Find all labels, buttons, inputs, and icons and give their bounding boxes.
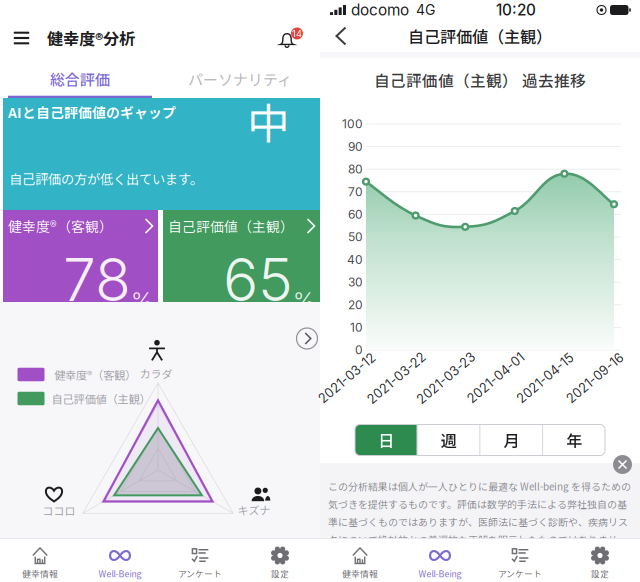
staticText: アンケート [498, 567, 542, 580]
staticText: 週 [441, 428, 457, 452]
staticText: AIと自己評価値のギャップ [8, 102, 176, 122]
button[interactable]: 週 [418, 424, 480, 455]
staticText: 60 [348, 207, 363, 222]
button[interactable]: 健幸情報 [320, 538, 400, 582]
staticText: 2021-03-12 [312, 370, 382, 386]
staticText: Well-Being [418, 567, 461, 580]
button[interactable]: アンケート [160, 538, 240, 582]
staticText: 2021-04-01 [461, 370, 531, 386]
button[interactable]: Next [296, 328, 317, 349]
staticText: 健幸情報 [342, 567, 378, 580]
button[interactable]: Well-Being [400, 538, 480, 582]
staticText: パーソナリティ [188, 68, 292, 90]
button[interactable]: パーソナリティ [160, 60, 320, 98]
staticText: 14 [292, 28, 302, 39]
staticText: 総合評価 [50, 68, 110, 90]
staticText: カラダ [139, 366, 172, 381]
button[interactable]: Notifications [273, 16, 309, 60]
staticText: 70 [348, 184, 363, 199]
staticText: 自己評価値（主観） 過去推移 [374, 69, 586, 91]
staticText: 40 [347, 252, 363, 267]
staticText: 80 [348, 162, 363, 176]
button[interactable]: 設定 [560, 538, 640, 582]
staticText: 50 [348, 230, 363, 244]
staticText: 設定 [271, 567, 289, 580]
staticText: 20 [348, 297, 363, 312]
staticText: % [131, 286, 153, 315]
staticText: 設定 [591, 567, 609, 580]
staticText: 90 [348, 139, 363, 154]
staticText: 健幸情報 [22, 567, 58, 580]
staticText: 健幸度®分析 [47, 26, 135, 50]
staticText: 健幸度®（客観） [54, 366, 136, 383]
button[interactable]: Back [320, 20, 362, 52]
staticText: キズナ [237, 502, 270, 518]
button[interactable]: 自己評価値（主観） [163, 210, 320, 302]
button[interactable]: 設定 [240, 538, 320, 582]
button[interactable]: 年 [543, 424, 605, 455]
button[interactable]: Close [613, 455, 632, 474]
staticText: 4G [416, 1, 435, 18]
staticText: 中 [247, 90, 290, 152]
button[interactable]: 総合評価 [0, 60, 160, 98]
staticText: 0 [355, 343, 363, 357]
staticText: 健幸度®（客観） [8, 216, 113, 236]
staticText: 月 [503, 428, 519, 452]
staticText: Well-Being [98, 567, 141, 580]
staticText: 30 [348, 275, 363, 289]
staticText: 自己評価値（主観） [51, 390, 150, 407]
staticText: 78 [63, 244, 131, 315]
button[interactable]: Well-Being [80, 538, 160, 582]
staticText: 自己評価値（主観） [168, 216, 294, 236]
staticText: 日 [378, 428, 394, 452]
staticText: 100 [342, 117, 363, 131]
staticText: docomo [351, 1, 409, 19]
staticText: 年 [566, 428, 582, 452]
staticText: 2021-03-22 [361, 370, 433, 386]
staticText: 2021-04-15 [510, 370, 580, 386]
staticText: 自己評価の方が低く出ています。 [9, 169, 203, 188]
staticText: % [293, 286, 315, 315]
staticText: 10:20 [496, 1, 536, 19]
button[interactable]: 日 [355, 424, 417, 455]
staticText: 10 [350, 320, 363, 335]
staticText: この分析結果は個人が一人ひとりに最適な Well-being を得るための気づき… [328, 479, 631, 538]
staticText: 2021-09-16 [560, 370, 630, 386]
staticText: 2021-03-23 [410, 370, 482, 386]
staticText: 65 [223, 244, 293, 315]
staticText: ココロ [42, 503, 75, 518]
staticText: 自己評価値（主観） [408, 24, 552, 48]
button[interactable]: Menu [6, 16, 37, 60]
button[interactable]: 月 [480, 424, 542, 455]
button[interactable]: アンケート [480, 538, 560, 582]
staticText: アンケート [178, 567, 222, 580]
button[interactable]: 健幸度®（客観） [3, 210, 158, 302]
button[interactable]: 健幸情報 [0, 538, 80, 582]
